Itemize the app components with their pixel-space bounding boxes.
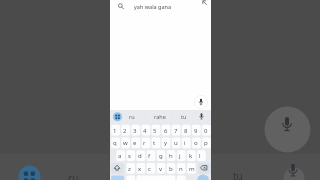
button[interactable]: x (138, 165, 142, 173)
button[interactable]: m (189, 165, 195, 173)
button[interactable]: p (204, 139, 208, 147)
button[interactable]: ru (129, 113, 135, 120)
button[interactable]: 2 (123, 127, 127, 135)
button[interactable]: 8 (184, 127, 188, 135)
button[interactable]: r (143, 139, 146, 147)
button[interactable]: k (189, 152, 193, 160)
button[interactable]: o (194, 139, 198, 147)
button[interactable]: v (159, 165, 163, 173)
button[interactable]: l (199, 152, 201, 160)
button[interactable]: 1 (113, 127, 117, 135)
button[interactable]: w (123, 139, 128, 147)
button[interactable]: s (128, 152, 131, 160)
button[interactable]: tu (181, 113, 187, 120)
button[interactable]: q (113, 139, 117, 147)
staticText: ru (68, 171, 79, 180)
button[interactable]: u (174, 139, 178, 147)
button[interactable]: 9 (194, 127, 198, 135)
button[interactable]: rahe (154, 113, 166, 120)
button[interactable]: yah wala gana (134, 3, 172, 10)
button[interactable]: e (133, 139, 137, 147)
button[interactable]: a (118, 152, 122, 160)
button[interactable]: d (138, 152, 142, 160)
button[interactable]: j (179, 152, 181, 160)
button[interactable] (194, 95, 208, 109)
button[interactable]: 0 (204, 127, 208, 135)
button[interactable]: 5 (153, 127, 157, 135)
button[interactable]: 4 (143, 127, 147, 135)
button[interactable]: z (128, 165, 131, 173)
button[interactable]: 6 (164, 127, 168, 135)
button[interactable]: n (179, 165, 183, 173)
button[interactable]: y (164, 139, 168, 147)
button[interactable]: 7 (174, 127, 178, 135)
staticText: tu (233, 169, 243, 180)
button[interactable]: t (153, 139, 156, 147)
button[interactable]: b (169, 165, 173, 173)
button[interactable]: c (148, 165, 151, 173)
button[interactable]: i (184, 139, 186, 147)
button[interactable]: 3 (133, 127, 137, 135)
button[interactable]: h (169, 152, 173, 160)
button[interactable]: g (159, 152, 163, 160)
button[interactable]: f (148, 152, 151, 160)
